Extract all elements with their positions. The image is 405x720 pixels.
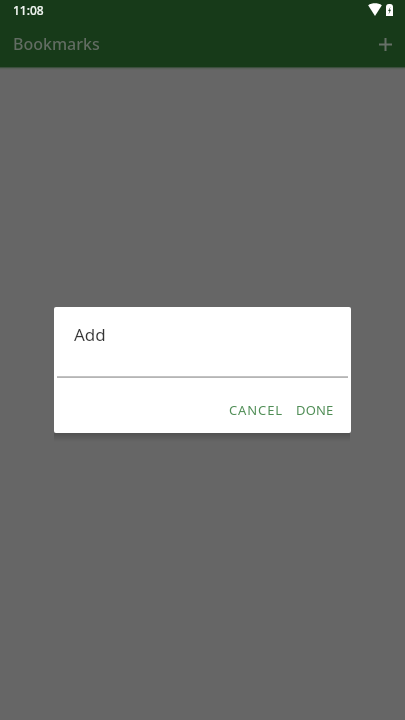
staticText: 11:08 xyxy=(13,2,44,18)
staticText: Bookmarks xyxy=(13,33,100,55)
button[interactable]: Add bookmark xyxy=(363,22,405,66)
staticText: CANCEL xyxy=(229,401,284,419)
button[interactable]: DONE xyxy=(291,394,339,426)
button[interactable]: CANCEL xyxy=(223,394,289,426)
button[interactable]: Dismiss dialog xyxy=(0,0,405,720)
staticText: DONE xyxy=(296,401,334,419)
staticText: Add xyxy=(74,323,106,346)
